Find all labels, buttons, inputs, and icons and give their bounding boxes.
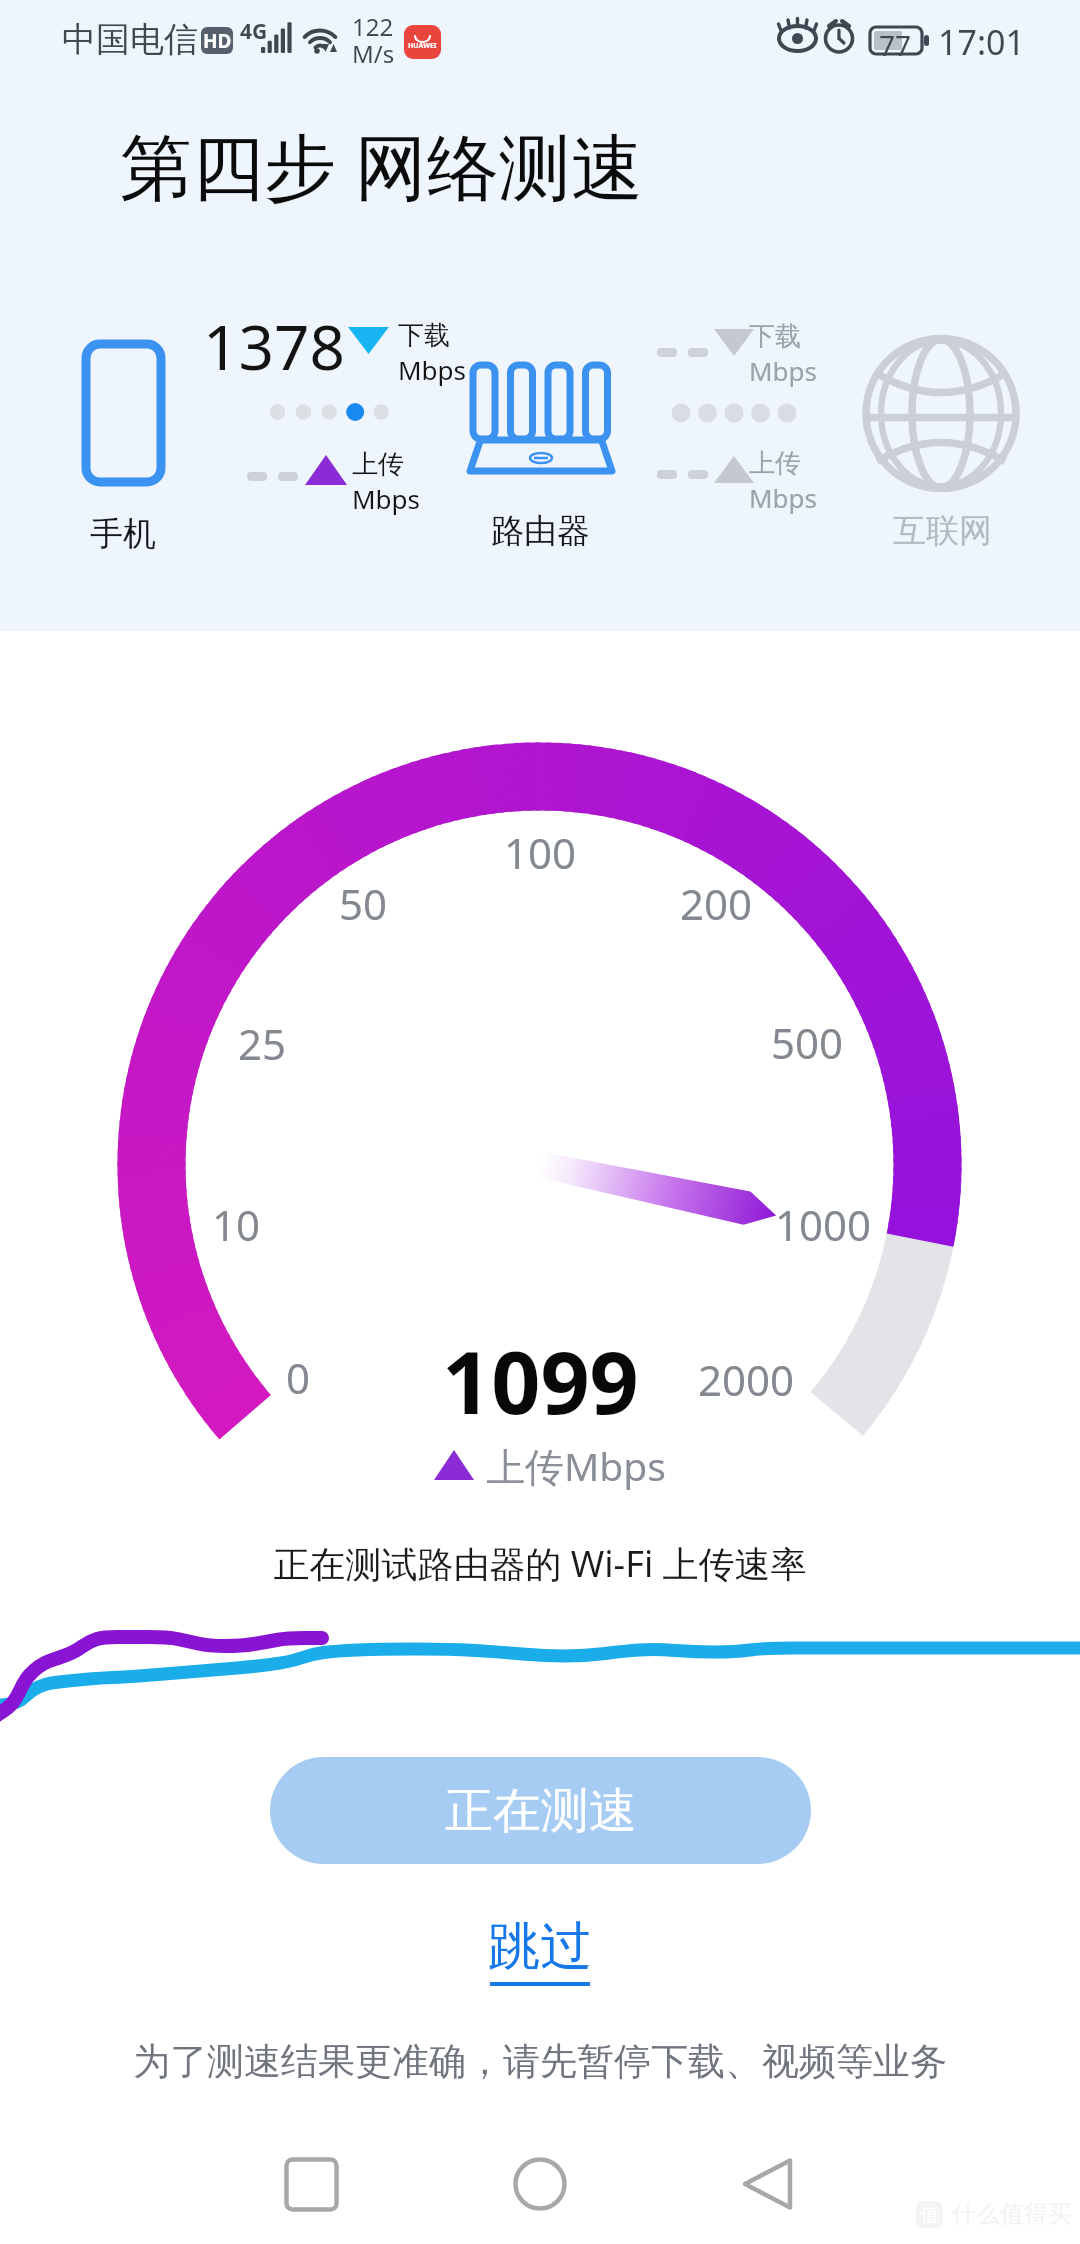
- staticText: 中国电信: [62, 18, 198, 61]
- staticText: 下载: [749, 320, 801, 353]
- staticText: 17:01: [938, 19, 1025, 65]
- staticText: 手机: [90, 513, 156, 555]
- staticText: 上传: [352, 448, 404, 481]
- staticText: 值: [920, 2203, 939, 2227]
- staticText: 200: [680, 875, 753, 932]
- staticText: Mbps: [398, 352, 467, 387]
- staticText: Mbps: [749, 353, 818, 388]
- staticText: 什么值得买: [952, 2199, 1072, 2229]
- staticText: 互联网: [893, 510, 992, 552]
- button[interactable]: 正在测速: [270, 1757, 811, 1864]
- staticText: 1000: [775, 1196, 872, 1253]
- staticText: 正在测试路由器的 Wi-Fi 上传速率: [273, 1539, 807, 1588]
- staticText: 0: [286, 1349, 311, 1406]
- staticText: 上传Mbps: [486, 1439, 667, 1492]
- staticText: Mbps: [352, 481, 421, 516]
- staticText: 第四步 网络测速: [120, 116, 643, 214]
- staticText: 2000: [698, 1351, 795, 1408]
- staticText: 25: [238, 1015, 287, 1072]
- staticText: 路由器: [491, 510, 590, 552]
- staticText: 100: [504, 824, 577, 881]
- staticText: 50: [339, 875, 388, 932]
- staticText: HUAWEI: [408, 41, 437, 51]
- button[interactable]: 跳过: [472, 1908, 608, 1992]
- staticText: 4G: [240, 17, 268, 46]
- staticText: 1099: [442, 1322, 639, 1432]
- staticText: 500: [771, 1014, 844, 1071]
- staticText: HD: [203, 28, 232, 54]
- staticText: 跳过: [488, 1914, 592, 1980]
- staticText: 下载: [398, 319, 450, 352]
- staticText: 正在测速: [445, 1781, 637, 1841]
- staticText: 10: [212, 1196, 261, 1253]
- button[interactable]: Home: [479, 2124, 601, 2244]
- staticText: 122: [352, 10, 394, 43]
- button[interactable]: Recent apps: [250, 2124, 372, 2244]
- staticText: 77: [879, 26, 912, 64]
- staticText: M/s: [352, 37, 395, 70]
- staticText: 上传: [749, 447, 801, 480]
- staticText: 1378: [203, 304, 345, 388]
- staticText: Mbps: [749, 480, 818, 515]
- button[interactable]: Back: [707, 2124, 829, 2244]
- staticText: 为了测速结果更准确，请先暂停下载、视频等业务: [133, 2038, 947, 2085]
